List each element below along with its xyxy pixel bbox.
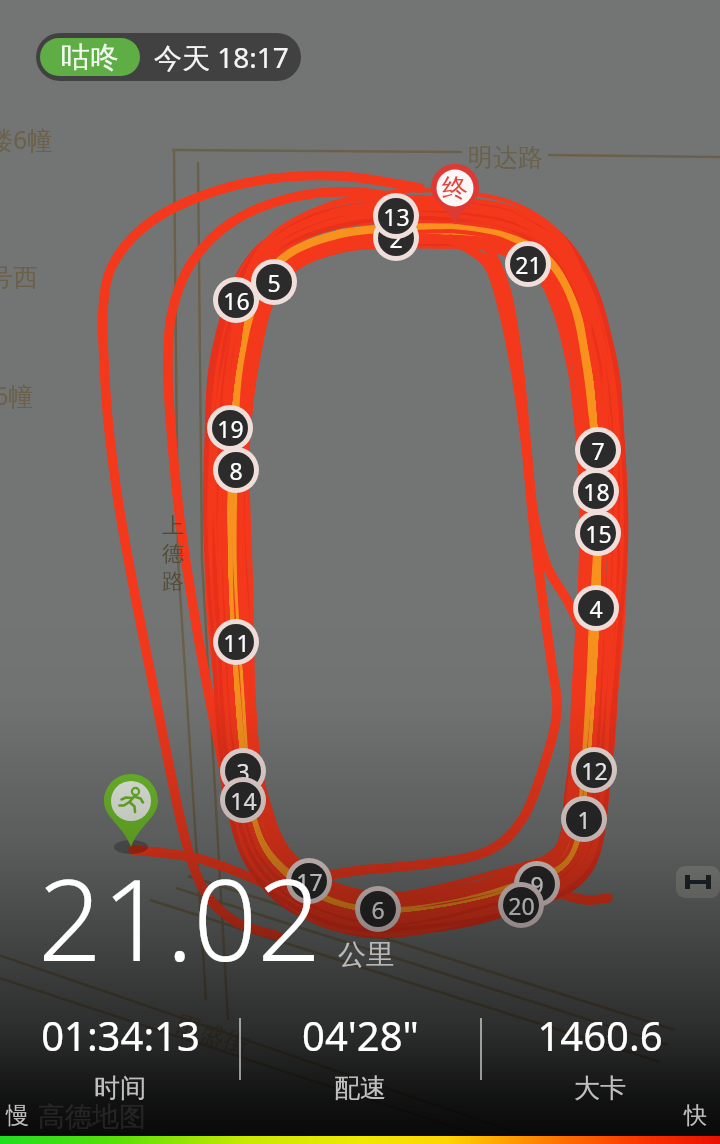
staticText: 7 [591, 435, 605, 466]
button[interactable]: 18 [578, 473, 614, 509]
staticText: 配速 [334, 1072, 386, 1105]
button[interactable]: 1 [566, 801, 602, 837]
staticText: 明达路 [468, 142, 543, 173]
staticText: 大卡 [574, 1072, 626, 1105]
staticText: 8 [229, 455, 243, 486]
button[interactable]: 15 [580, 515, 616, 551]
staticText: 号西 [0, 262, 38, 293]
staticText: 慢 [6, 1101, 29, 1130]
button[interactable]: 04'28" [240, 1008, 480, 1105]
button[interactable]: 11 [218, 624, 254, 660]
button[interactable]: 1460.6 [480, 1008, 720, 1105]
staticText: 1460.6 [537, 1008, 663, 1062]
staticText: 楼6幢 [0, 122, 53, 156]
staticText: 2 [389, 223, 403, 254]
button[interactable]: 20 [503, 887, 539, 923]
staticText: 12 [581, 755, 608, 786]
staticText: 上 [162, 512, 184, 540]
button[interactable]: 咕咚 [36, 33, 301, 81]
staticText: 公里 [338, 937, 394, 972]
staticText: 3 [236, 756, 250, 787]
button[interactable]: 12 [576, 752, 612, 788]
staticText: 终 [442, 172, 468, 205]
staticText: 15 [585, 518, 612, 549]
staticText: 20 [508, 890, 535, 921]
button[interactable]: 8 [218, 452, 254, 488]
staticText: 咕咚 [61, 39, 119, 76]
staticText: 04'28" [302, 1008, 419, 1062]
staticText: 14 [230, 785, 257, 816]
staticText: 11 [223, 627, 250, 658]
button[interactable]: 17 [291, 863, 327, 899]
staticText: 今天 18:17 [154, 38, 289, 76]
button[interactable]: 3 [225, 753, 261, 789]
staticText: 田盛街 [172, 1009, 253, 1062]
staticText: 21 [515, 249, 542, 280]
button[interactable]: 2 [378, 220, 414, 256]
button[interactable]: 21 [510, 246, 546, 282]
button[interactable]: 7 [580, 432, 616, 468]
staticText: 4 [589, 593, 603, 624]
staticText: 快 [684, 1101, 707, 1130]
staticText: 路 [162, 568, 184, 596]
staticText: 高德地图 [38, 1100, 146, 1134]
staticText: 5 [267, 267, 281, 298]
button[interactable]: 6 [360, 891, 396, 927]
staticText: 01:34:13 [41, 1008, 200, 1062]
button[interactable]: 5 [256, 264, 292, 300]
staticText: 1 [577, 804, 591, 835]
staticText: 9 [530, 869, 544, 900]
staticText: 时间 [94, 1072, 146, 1105]
staticText: 21.02 [38, 841, 322, 994]
staticText: 19 [217, 413, 244, 444]
button[interactable]: 9 [519, 866, 555, 902]
staticText: 17 [296, 866, 323, 897]
button[interactable]: 16 [218, 282, 254, 318]
staticText: 16 [223, 285, 250, 316]
button[interactable]: 4 [578, 590, 614, 626]
staticText: 18 [583, 476, 610, 507]
button[interactable]: 13 [378, 198, 414, 234]
button[interactable]: 19 [212, 410, 248, 446]
staticText: 德 [162, 540, 184, 568]
button[interactable]: 01:34:13 [0, 1008, 240, 1105]
staticText: 6 [371, 894, 385, 925]
button[interactable]: 14 [225, 782, 261, 818]
staticText: 13 [383, 201, 410, 232]
staticText: 6幢 [0, 378, 34, 412]
